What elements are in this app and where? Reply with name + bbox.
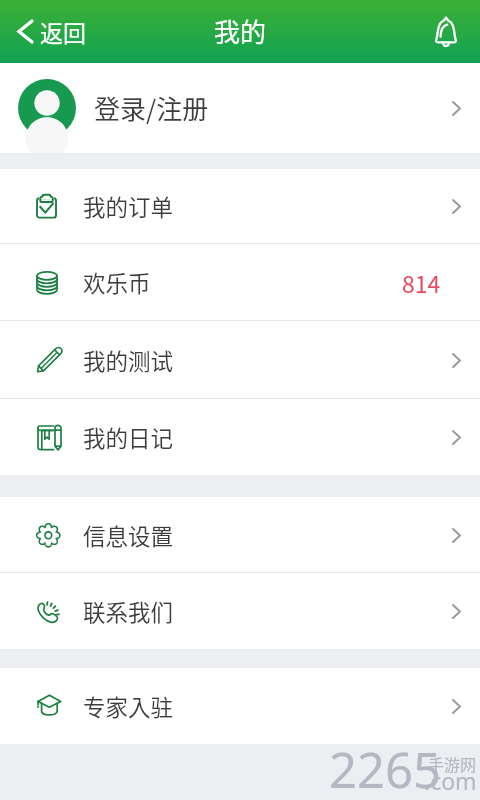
staticText: 我的测试 [83,344,174,377]
staticText: 信息设置 [83,519,174,552]
button[interactable]: 返回 [13,9,90,54]
button[interactable]: 联系我们 [0,573,480,649]
button[interactable]: 我的日记 [0,399,480,475]
button[interactable]: 信息设置 [0,497,480,573]
button[interactable]: 欢乐币 [0,244,480,321]
staticText: 814 [402,266,441,299]
staticText: 专家入驻 [83,690,174,723]
button[interactable]: 我的订单 [0,169,480,244]
staticText: 2265 [329,736,442,792]
staticText: 我的订单 [83,190,174,223]
staticText: 我的日记 [83,421,174,454]
staticText: .com [424,765,477,796]
button[interactable]: 专家入驻 [0,668,480,744]
button[interactable]: 我的测试 [0,321,480,399]
button[interactable]: 登录/注册 [0,63,480,153]
staticText: 手游网 [428,752,477,775]
staticText: 返回 [40,15,86,48]
staticText: 我的 [214,12,267,50]
button[interactable]: Notifications [426,12,466,52]
staticText: 欢乐币 [83,266,151,299]
staticText: 联系我们 [83,595,174,628]
staticText: 登录/注册 [94,89,209,127]
